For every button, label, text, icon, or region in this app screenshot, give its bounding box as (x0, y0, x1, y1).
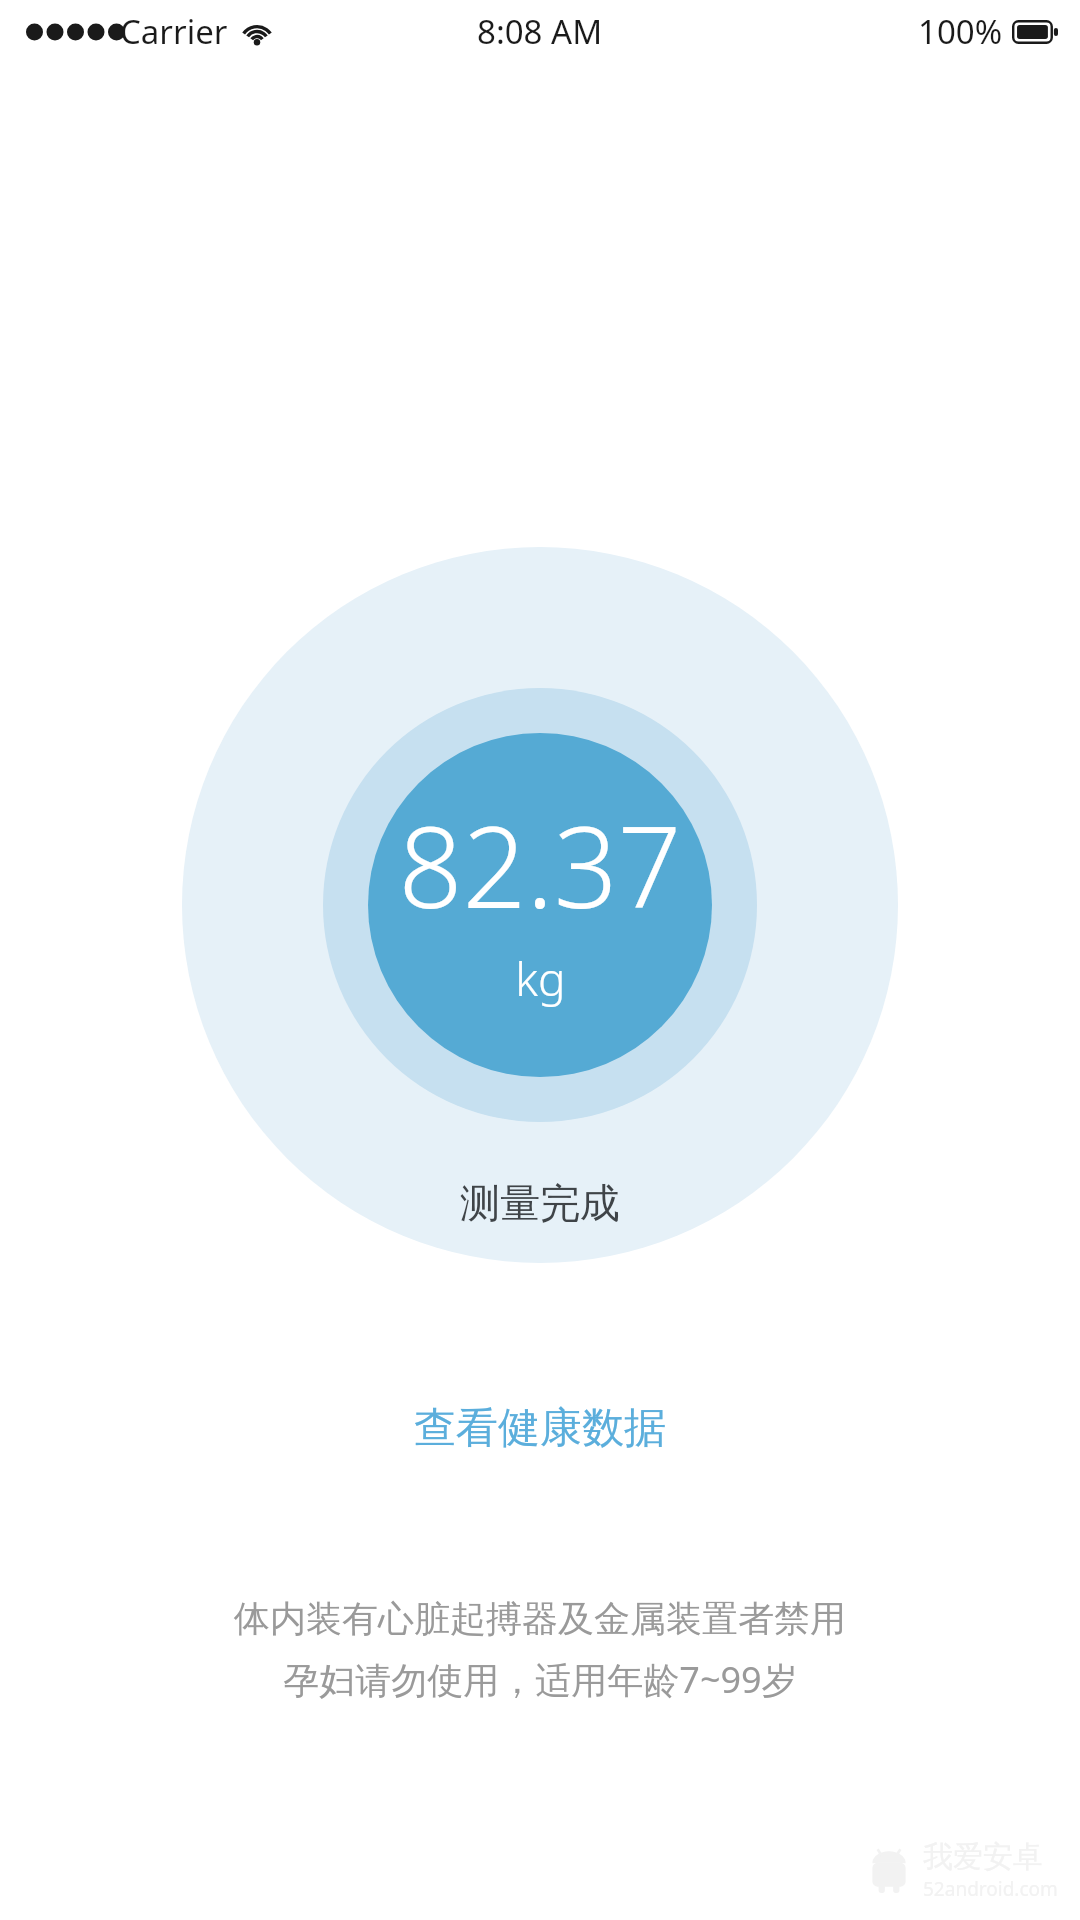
staticText: 82.37 (398, 788, 682, 941)
staticText: 100% (918, 9, 1003, 54)
staticText: 测量完成 (460, 1178, 620, 1228)
staticText: 体内装有心脏起搏器及金属装置者禁用 (234, 1596, 846, 1641)
staticText: Carrier (120, 9, 228, 54)
staticText: kg (515, 947, 566, 1010)
staticText: 52android.com (923, 1876, 1058, 1902)
staticText: 查看健康数据 (414, 1402, 666, 1455)
staticText: 8:08 AM (477, 9, 603, 54)
staticText: 我爱安卓 (923, 1838, 1043, 1876)
button[interactable]: 查看健康数据 (390, 1392, 690, 1465)
staticText: 孕妇请勿使用，适用年龄7~99岁 (283, 1655, 798, 1704)
